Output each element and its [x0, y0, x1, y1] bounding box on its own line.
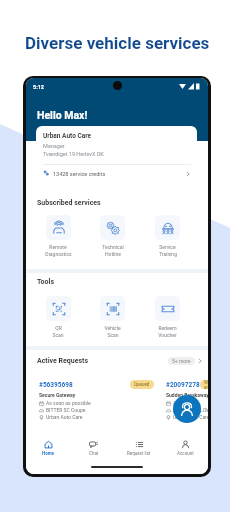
button[interactable]: Technical	[85, 215, 140, 257]
button[interactable]: Request list	[116, 436, 162, 460]
button[interactable]: Account	[162, 436, 208, 460]
button[interactable]: QR	[31, 296, 85, 338]
button[interactable]: #56395698	[34, 376, 158, 430]
staticText: Technical	[102, 244, 124, 250]
staticText: Hotline	[105, 251, 121, 257]
staticText: Redeem	[158, 325, 177, 331]
staticText: As soon as possible	[173, 400, 208, 406]
staticText: Sudden Breakaway	[166, 392, 208, 398]
button[interactable]: Vehicle	[85, 296, 140, 338]
button[interactable]: Home	[26, 436, 71, 460]
staticText: Hello Max!	[37, 109, 88, 121]
staticText: Home	[42, 451, 55, 456]
staticText: Account	[177, 451, 194, 456]
staticText: BITTER SC Coupe	[46, 407, 86, 413]
staticText: Service	[159, 244, 176, 250]
button[interactable]: Chat	[71, 436, 116, 460]
button[interactable]: Contact support	[173, 395, 201, 423]
staticText: #56395698	[39, 381, 73, 389]
staticText: ASTON HOLLOW	[173, 407, 208, 413]
staticText: Subscribed services	[37, 199, 101, 207]
button[interactable]: #20097278	[161, 376, 208, 430]
staticText: #20097278	[166, 381, 200, 389]
staticText: Manager	[43, 143, 65, 149]
staticText: 5+ more	[172, 358, 191, 364]
button[interactable]: Remote	[31, 215, 85, 257]
staticText: Waiting	[204, 380, 208, 389]
staticText: Remote	[49, 244, 67, 250]
button[interactable]: 5+ more	[168, 357, 195, 365]
staticText: Tools	[37, 278, 54, 286]
staticText: Urban Auto Care	[46, 414, 83, 420]
staticText: Scan	[52, 332, 64, 338]
staticText: Queued	[134, 382, 150, 387]
staticText: 13428 service credits	[53, 171, 106, 177]
staticText: Diagnostics	[45, 251, 72, 257]
staticText: Secure Gateway	[39, 392, 76, 398]
staticText: Chat	[89, 451, 99, 456]
staticText: Urban Auto Care	[173, 414, 208, 420]
staticText: Active Requests	[37, 357, 89, 365]
staticText: Tværdiget 19 HerlevX DK	[43, 151, 104, 157]
staticText: Request list	[127, 451, 151, 456]
staticText: Urban Auto Care	[43, 132, 92, 140]
staticText: Training	[159, 251, 177, 257]
button[interactable]: Service	[140, 215, 195, 257]
staticText: Voucher	[158, 332, 177, 338]
staticText: QR	[55, 325, 62, 331]
staticText: Scan	[107, 332, 119, 338]
staticText: Diverse vehicle services	[25, 33, 210, 53]
staticText: Vehicle	[104, 325, 121, 331]
button[interactable]: Redeem	[140, 296, 195, 338]
staticText: 5:12	[33, 84, 45, 90]
button[interactable]: 13428 service credits	[43, 165, 191, 182]
staticText: As soon as possible	[46, 400, 91, 406]
